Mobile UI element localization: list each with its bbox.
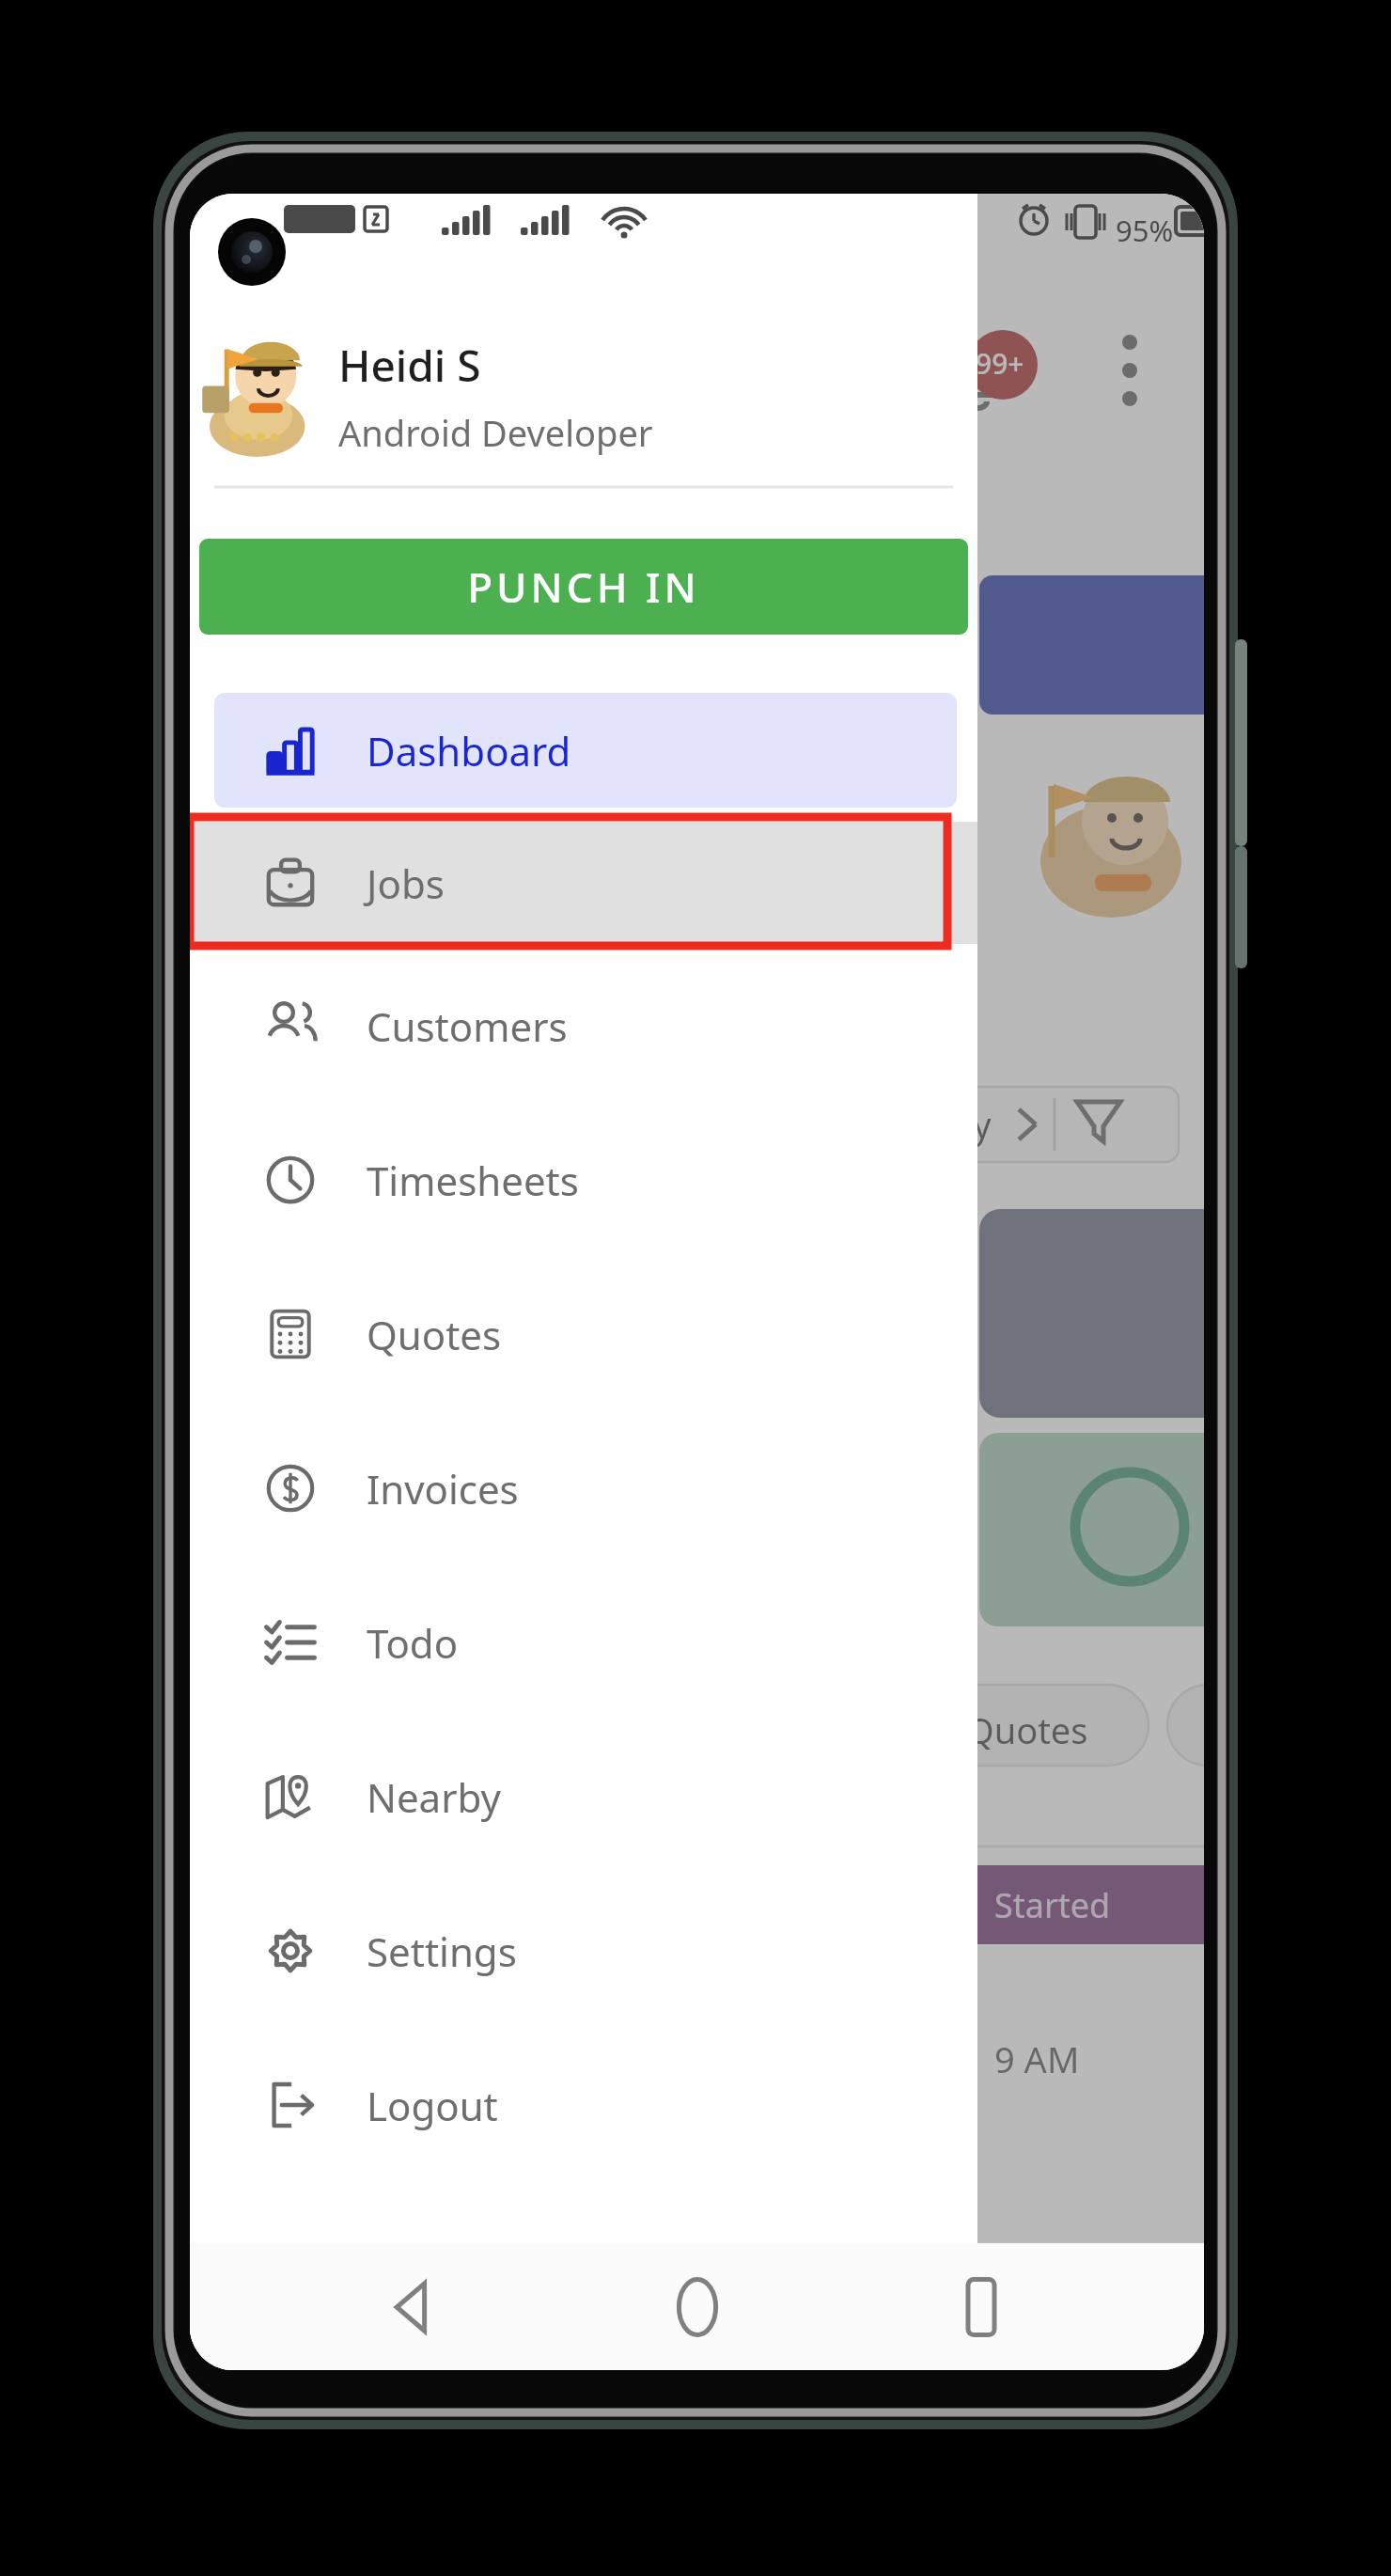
button[interactable]: Quotes [190, 1264, 977, 1405]
staticText: Heidi S [338, 336, 481, 395]
staticText: 99+ [976, 344, 1024, 383]
staticText: Logout [367, 2079, 498, 2132]
button[interactable]: Settings [190, 1880, 977, 2021]
button[interactable]: Logout [190, 2034, 977, 2175]
staticText: ay [953, 1100, 992, 1149]
button[interactable]: Nearby [190, 1726, 977, 1867]
staticText: Customers [367, 999, 568, 1053]
button[interactable]: Heidi S [190, 316, 977, 476]
staticText: Started [994, 1882, 1111, 1928]
button[interactable]: Todo [190, 1572, 977, 1713]
staticText: Todo [367, 1616, 459, 1670]
staticText: Dashboard [367, 724, 571, 778]
button[interactable]: Dashboard [214, 693, 957, 808]
button[interactable]: Timesheets [190, 1109, 977, 1250]
button[interactable]: Recents [920, 2246, 1042, 2368]
button[interactable]: Customers [190, 955, 977, 1096]
staticText: Timesheets [367, 1154, 579, 1207]
button[interactable]: Back [352, 2246, 474, 2368]
staticText: PUNCH IN [467, 558, 700, 615]
staticText: 9 AM [994, 2034, 1080, 2083]
staticText: Quotes [367, 1308, 502, 1361]
staticText: du, [962, 2283, 1023, 2336]
button[interactable]: Jobs [190, 822, 977, 944]
button[interactable]: Home [636, 2246, 758, 2368]
staticText: Invoices [367, 1462, 519, 1516]
button[interactable]: Invoices [190, 1418, 977, 1559]
staticText: Quotes [966, 1705, 1088, 1754]
staticText: Jobs [367, 856, 445, 910]
staticText: Settings [367, 1924, 517, 1978]
button[interactable]: PUNCH IN [199, 539, 968, 635]
staticText: Nearby [367, 1770, 501, 1824]
staticText: Android Developer [338, 408, 653, 457]
staticText: 95% [1116, 211, 1174, 250]
